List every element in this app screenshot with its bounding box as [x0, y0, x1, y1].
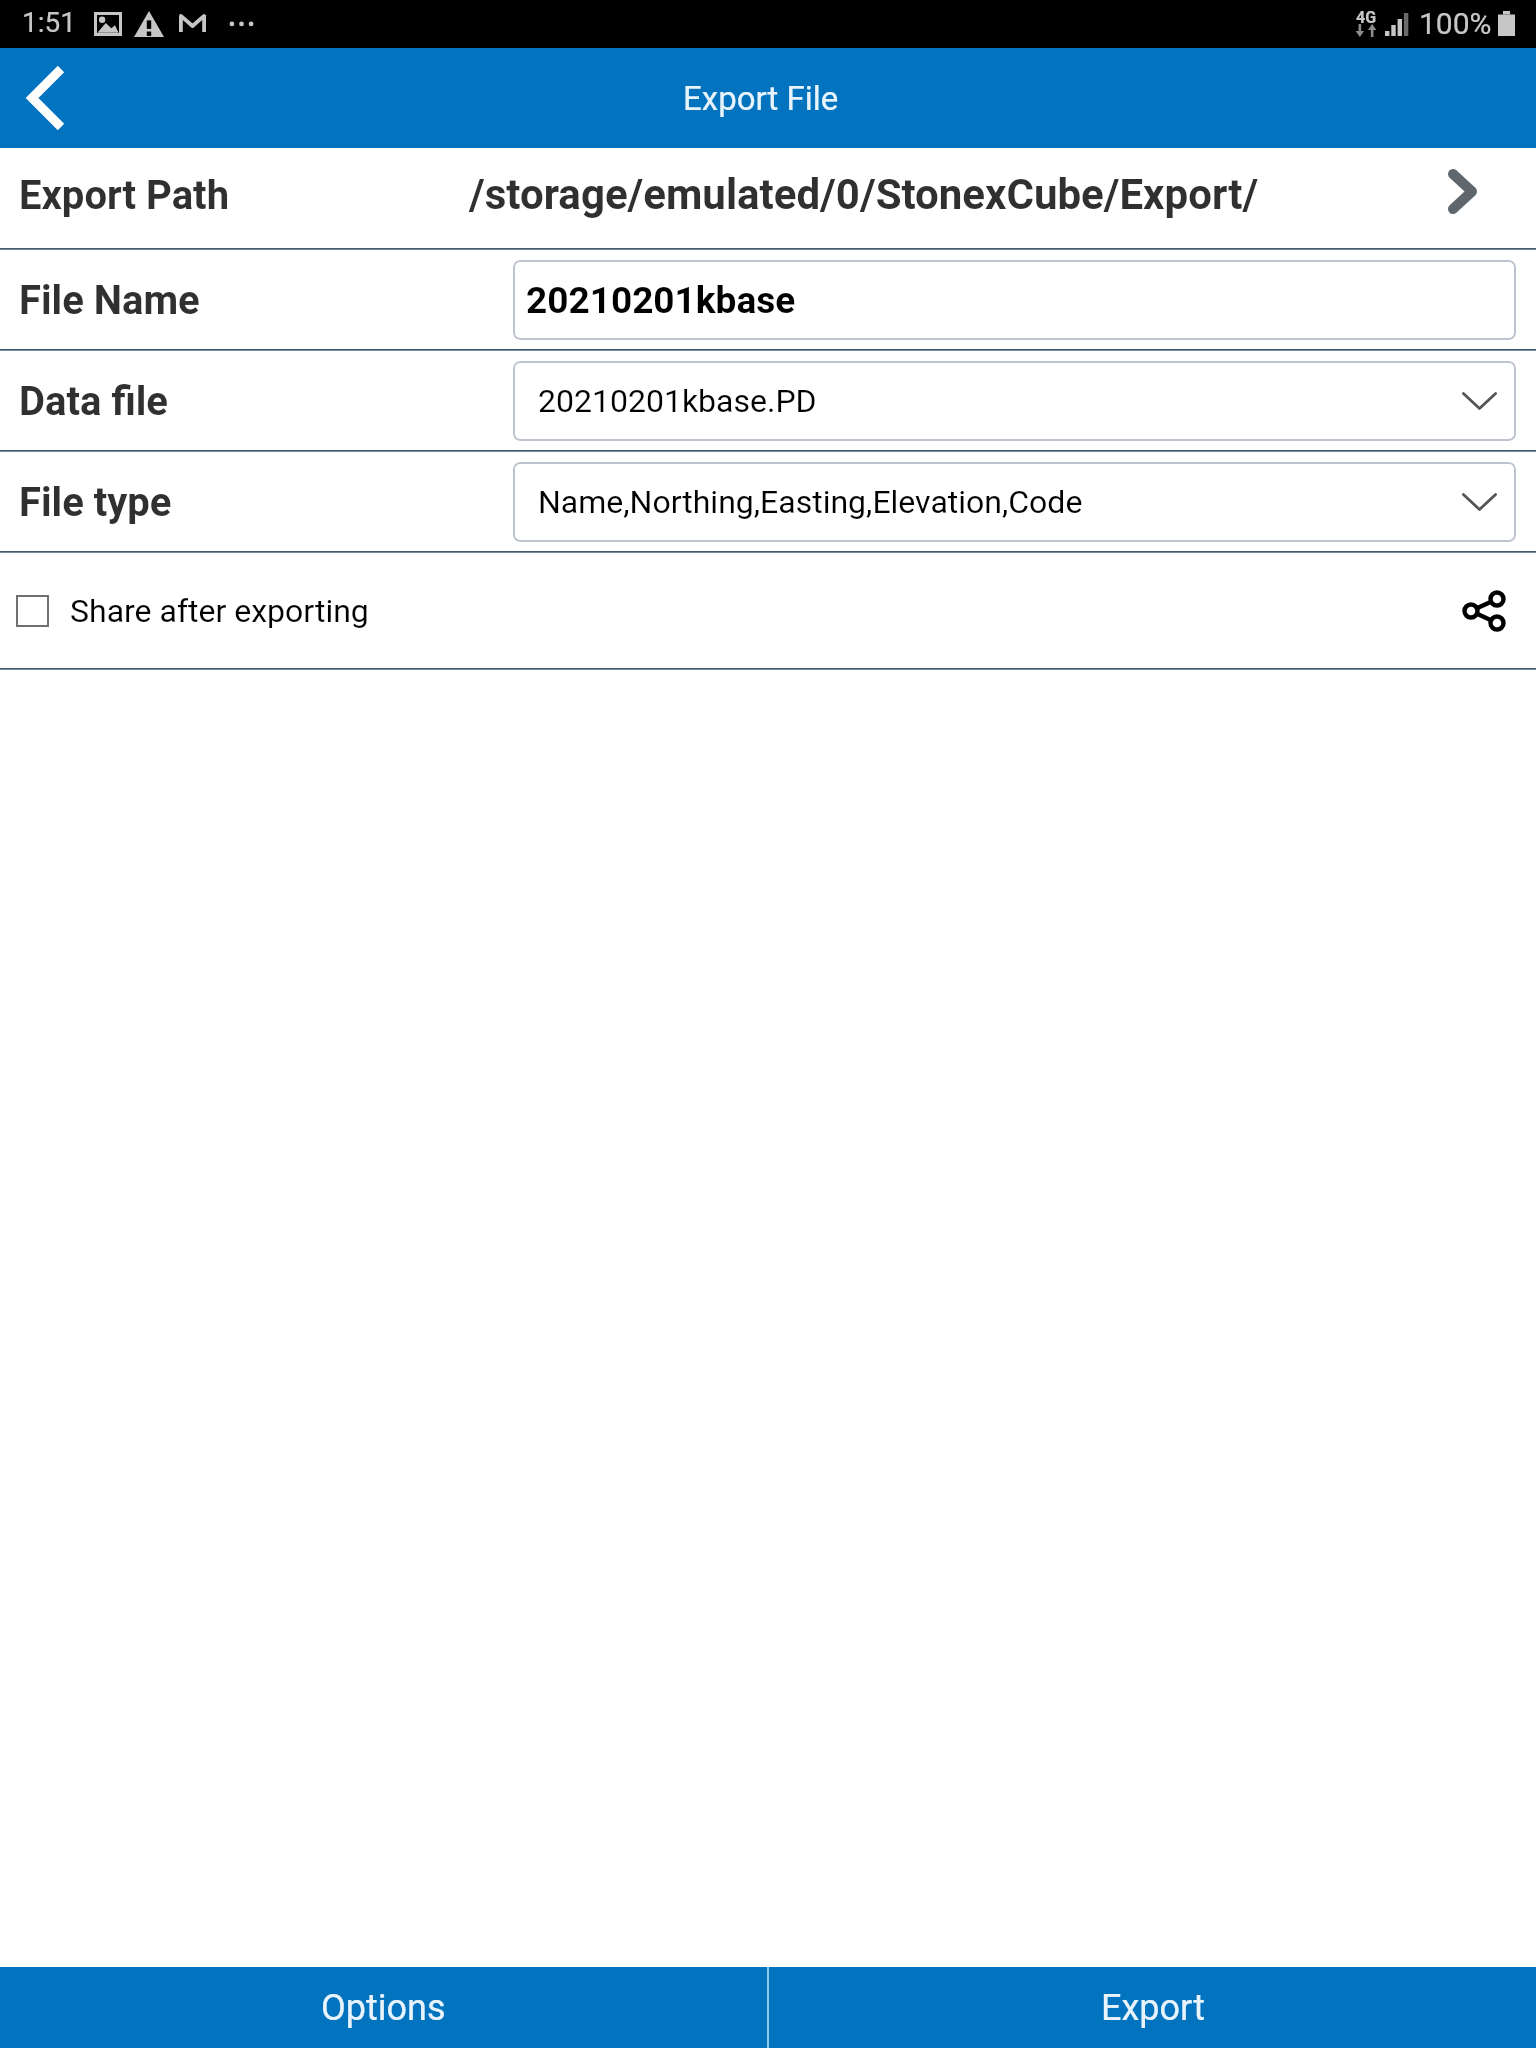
- staticText: Data file: [19, 378, 168, 425]
- staticText: /storage/emulated/0/StonexCube/Export/: [469, 170, 1259, 219]
- staticText: 1:51: [22, 6, 76, 39]
- staticText: 20210201kbase.PD: [538, 382, 817, 420]
- button[interactable]: Share after exporting: [0, 553, 700, 668]
- button[interactable]: 20210201kbase.PD: [513, 361, 1516, 441]
- staticText: Share after exporting: [70, 592, 369, 630]
- staticText: 100%: [1419, 6, 1492, 41]
- staticText: Export Path: [19, 172, 230, 219]
- staticText: Options: [321, 1987, 446, 2029]
- staticText: File type: [19, 479, 172, 526]
- staticText: 4G: [1356, 8, 1377, 27]
- staticText: Name,Northing,Easting,Elevation,Code: [538, 483, 1083, 521]
- button[interactable]: Export Path: [0, 148, 1536, 248]
- button[interactable]: Name,Northing,Easting,Elevation,Code: [513, 462, 1516, 542]
- staticText: Export File: [683, 79, 839, 118]
- staticText: File Name: [19, 277, 200, 324]
- staticText: Export: [1101, 1987, 1205, 2029]
- button[interactable]: Options: [0, 1967, 767, 2048]
- staticText: 20210201kbase: [526, 279, 796, 322]
- button[interactable]: 20210201kbase: [513, 260, 1516, 340]
- button[interactable]: Navigate back: [0, 48, 92, 148]
- button[interactable]: Export: [769, 1967, 1536, 2048]
- button[interactable]: Share: [1428, 553, 1536, 668]
